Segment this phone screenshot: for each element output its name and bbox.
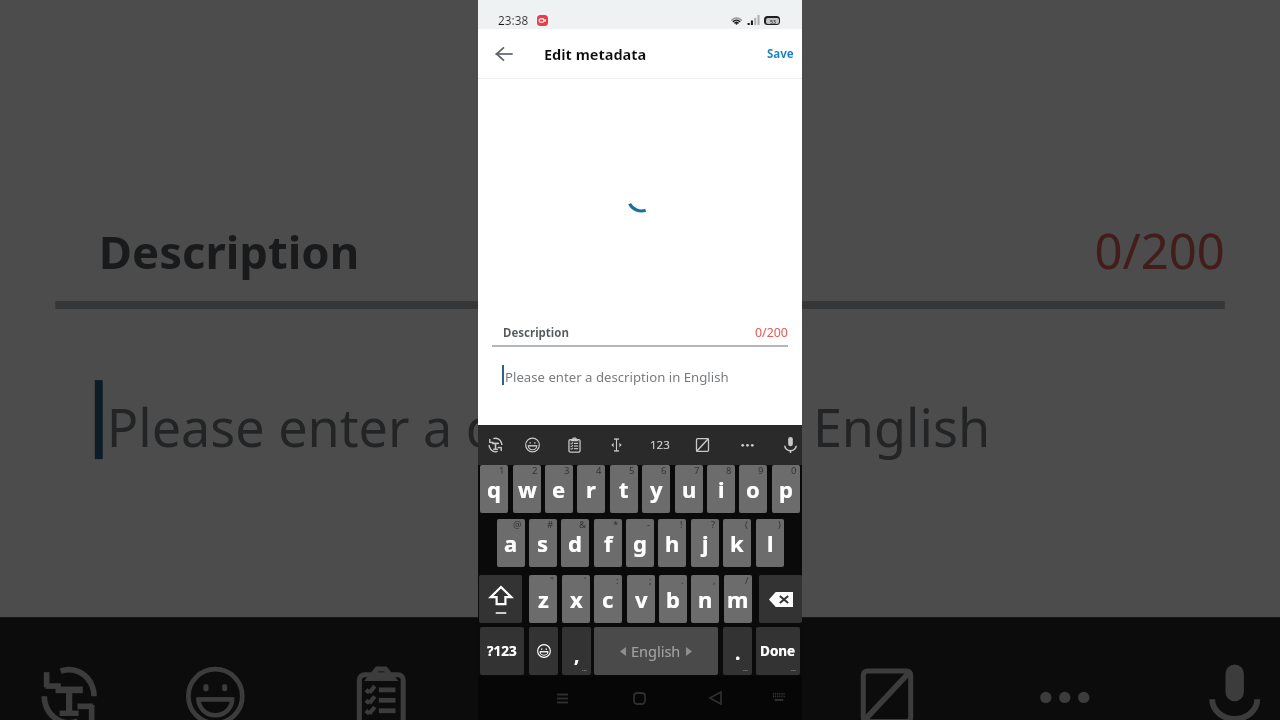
button[interactable]: " [529,575,557,623]
staticText: ... [582,665,588,673]
button[interactable]: Voice input [774,425,806,465]
button[interactable]: Hide keyboard [764,676,793,720]
button[interactable]: ! [658,519,686,567]
button[interactable]: Backspace [759,575,802,623]
staticText: w [518,474,537,504]
button[interactable]: Emoji [516,425,548,465]
staticText: & [579,519,586,531]
staticText: 5 [629,465,635,477]
staticText: ! [680,519,683,531]
staticText: 2 [532,465,538,477]
staticText: q [487,474,501,504]
button[interactable]: 5 [610,465,638,513]
button[interactable]: Emoji [150,617,276,720]
button[interactable]: ? [691,519,719,567]
staticText: c [602,584,614,614]
staticText: z [538,584,549,614]
staticText: 0/200 [1094,218,1225,285]
button[interactable]: Space [594,627,718,675]
staticText: r [586,474,596,504]
button[interactable]: 7 [675,465,703,513]
staticText: 123 [680,665,759,720]
staticText: . [735,640,741,666]
button[interactable]: / [724,575,752,623]
button[interactable]: Done [756,627,800,675]
button[interactable]: Period [723,627,752,675]
staticText: , [713,575,716,587]
button[interactable]: Comma [562,627,591,675]
button[interactable]: ; [627,575,655,623]
staticText: k [730,528,744,558]
button[interactable]: Numbers [656,617,782,720]
staticText: 1 [499,465,505,477]
staticText: j [702,528,709,558]
button[interactable]: ( [723,519,751,567]
staticText: o [746,474,760,504]
button[interactable]: - [626,519,654,567]
button[interactable]: 3 [545,465,573,513]
staticText: 53 [770,18,776,24]
button[interactable]: More options [731,425,763,465]
staticText: @ [513,519,522,531]
button[interactable]: 6 [642,465,670,513]
button[interactable]: Save [759,39,802,69]
staticText: b [666,584,680,614]
staticText: i [718,474,725,504]
button[interactable]: Stickers [822,617,948,720]
button[interactable]: Translate [479,425,511,465]
staticText: g [633,528,647,558]
staticText: ( [745,519,748,531]
button[interactable]: Translate [4,617,130,720]
button[interactable]: Recent apps [548,676,577,720]
button[interactable]: Back [490,40,518,68]
button[interactable]: 0 [772,465,800,513]
button[interactable]: 8 [707,465,735,513]
button[interactable]: & [561,519,589,567]
staticText: Description [99,222,360,285]
button[interactable]: More options [1000,617,1126,720]
staticText: 0/200 [755,324,788,341]
staticText: l [767,528,774,558]
button[interactable]: 1 [480,465,508,513]
button[interactable]: : [594,575,622,623]
button[interactable]: 9 [739,465,767,513]
button[interactable]: Home [625,676,654,720]
staticText: * [613,519,619,531]
staticText: p [779,474,793,504]
button[interactable]: # [529,519,557,567]
button[interactable]: Voice input [1169,617,1280,720]
button[interactable]: Shift [479,575,522,623]
button[interactable]: Text editing [482,617,608,720]
button[interactable]: . [659,575,687,623]
staticText: 9 [758,465,764,477]
button[interactable]: Text editing [600,425,632,465]
button[interactable]: ) [756,519,784,567]
button[interactable]: Stickers [686,425,718,465]
button[interactable]: Emoji [529,627,558,675]
staticText: ; [649,575,652,587]
staticText: ... [791,665,797,673]
button[interactable]: Clipboard [316,617,442,720]
staticText: m [727,584,749,614]
staticText: t [619,474,629,504]
button[interactable]: 2 [513,465,541,513]
button[interactable]: ' [562,575,590,623]
staticText: 7 [694,465,700,477]
button[interactable]: 4 [577,465,605,513]
staticText: Please enter a description in English [505,368,729,386]
staticText: s [537,528,549,558]
staticText: x [570,584,583,614]
staticText: ... [743,665,749,673]
staticText: 23:38 [498,12,529,28]
button[interactable]: Numbers [644,425,676,465]
staticText: Save [767,46,794,62]
staticText: - [647,519,651,531]
button[interactable]: Back [701,676,730,720]
button[interactable]: @ [497,519,525,567]
staticText: , [574,642,580,668]
button[interactable]: * [594,519,622,567]
staticText: English [631,641,681,661]
button[interactable]: Clipboard [558,425,590,465]
button[interactable]: ?123 [480,627,524,675]
button[interactable]: , [691,575,719,623]
